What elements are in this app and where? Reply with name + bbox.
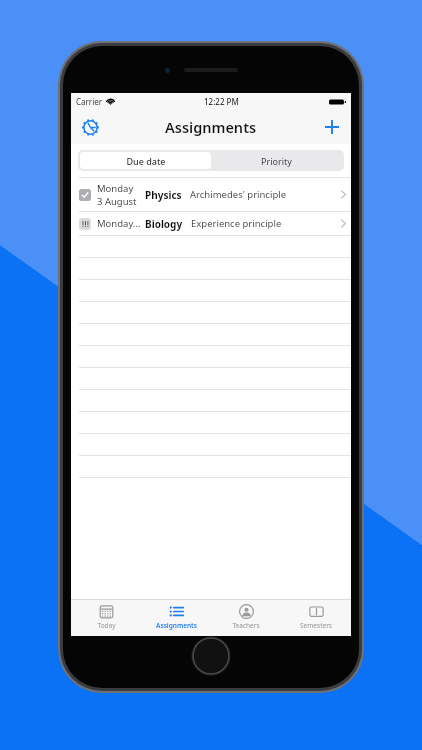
staticText: Carrier [76,96,103,107]
staticText: Assignments [165,117,257,137]
button[interactable]: Due date [80,152,211,169]
staticText: Experience principle [191,217,282,230]
button[interactable]: Today [71,600,141,636]
staticText: Due date [126,155,166,167]
button[interactable]: Settings [76,113,104,141]
button[interactable]: Monday... [71,212,351,235]
button[interactable]: Assignments [141,600,211,636]
staticText: Monday... [97,217,141,230]
staticText: Priority [261,155,292,167]
other: Home [191,636,231,676]
staticText: Semesters [300,621,332,630]
staticText: Today [97,621,116,630]
staticText: 3 August [97,195,137,208]
staticText: Archimedes' principle [190,188,287,201]
button[interactable]: Priority [211,152,342,169]
staticText: Physics [145,188,182,202]
staticText: Biology [145,217,183,231]
staticText: Monday [97,182,134,195]
button[interactable]: Teachers [211,600,281,636]
button[interactable]: Semesters [281,600,351,636]
staticText: Teachers [232,621,260,630]
button[interactable]: Add assignment [318,113,346,141]
staticText: 12:22 PM [204,96,239,107]
staticText: Assignments [156,621,197,630]
button[interactable]: Monday [71,178,351,211]
